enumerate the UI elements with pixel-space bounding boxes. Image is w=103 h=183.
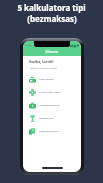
staticText: (bezmaksas) [27, 13, 77, 24]
button[interactable]: Neapliekamais min. [23, 125, 81, 138]
button[interactable]: Slimības lapas nauda [23, 86, 81, 99]
button[interactable]: Algas aprēķins [23, 73, 81, 86]
staticText: Neapliekamais min. [39, 130, 60, 133]
staticText: Sveiks, Lienīt! [29, 59, 54, 64]
staticText: Atvaļinājuma nauda [39, 104, 60, 107]
button[interactable]: Minimālā alga [23, 112, 81, 125]
staticText: Slimības lapas nauda [39, 91, 61, 94]
staticText: Minimālā alga [39, 117, 54, 120]
button[interactable]: Atvaļinājuma nauda [23, 99, 81, 112]
staticText: Algas aprēķins [39, 78, 54, 81]
staticText: Sākums [45, 49, 59, 54]
staticText: 5 kalkulatora tipi [17, 2, 86, 13]
staticText: 9:41 [26, 43, 31, 46]
staticText: Izvēlies kalkulatora veidu [30, 67, 58, 70]
